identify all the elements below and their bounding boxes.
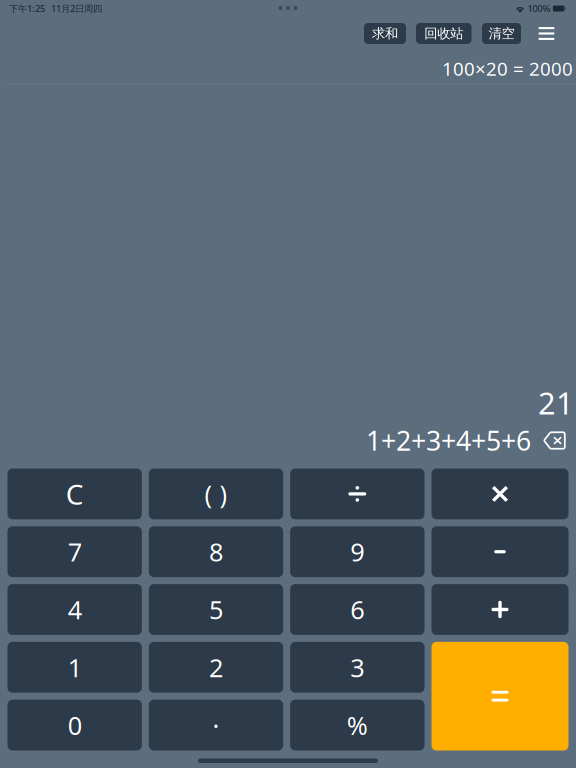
staticText: 3 bbox=[350, 650, 364, 684]
staticText: 1 bbox=[68, 650, 82, 684]
button[interactable]: 4 bbox=[7, 584, 142, 635]
staticText: 7 bbox=[68, 535, 82, 568]
button[interactable]: Add bbox=[431, 584, 568, 635]
button[interactable]: Multiply bbox=[431, 468, 568, 519]
button[interactable]: Equals bbox=[431, 642, 568, 750]
staticText: 9 bbox=[350, 535, 364, 568]
button[interactable]: 7 bbox=[7, 526, 142, 577]
button[interactable]: 2 bbox=[149, 642, 283, 693]
staticText: 下午1:25 11月2日周四 bbox=[9, 2, 102, 15]
staticText: 0 bbox=[68, 708, 82, 742]
button[interactable]: 0 bbox=[7, 700, 142, 750]
button[interactable]: Menu bbox=[534, 21, 559, 45]
button[interactable]: 6 bbox=[290, 584, 424, 635]
button[interactable]: 3 bbox=[290, 642, 424, 693]
button[interactable]: 5 bbox=[149, 584, 283, 635]
button[interactable]: Delete bbox=[531, 431, 569, 450]
button[interactable]: ( ) bbox=[149, 468, 283, 519]
staticText: 21 bbox=[538, 382, 574, 423]
button[interactable]: 清空 bbox=[482, 23, 521, 44]
staticText: 清空 bbox=[488, 25, 514, 42]
button[interactable]: 求和 bbox=[364, 23, 406, 44]
button[interactable]: 8 bbox=[149, 526, 283, 577]
staticText: ( ) bbox=[204, 477, 227, 511]
button[interactable]: · bbox=[149, 700, 283, 750]
staticText: 1+2+3+4+5+6 bbox=[366, 423, 531, 458]
staticText: 5 bbox=[209, 593, 223, 626]
staticText: 100×20 = 2000 bbox=[442, 56, 573, 81]
button[interactable]: % bbox=[290, 700, 424, 750]
staticText: 2 bbox=[209, 650, 223, 684]
staticText: 6 bbox=[350, 593, 364, 626]
staticText: · bbox=[212, 708, 219, 742]
staticText: 回收站 bbox=[424, 25, 463, 42]
staticText: 求和 bbox=[372, 25, 398, 42]
staticText: C bbox=[66, 475, 84, 512]
button[interactable]: Subtract bbox=[431, 526, 568, 577]
button[interactable]: 回收站 bbox=[416, 23, 471, 44]
staticText: % bbox=[347, 708, 368, 742]
button[interactable]: 1 bbox=[7, 642, 142, 693]
staticText: 100% bbox=[527, 2, 550, 15]
staticText: 4 bbox=[68, 593, 82, 626]
button[interactable]: C bbox=[7, 468, 142, 519]
button[interactable]: 9 bbox=[290, 526, 424, 577]
button[interactable]: Divide bbox=[290, 468, 424, 519]
staticText: 8 bbox=[209, 535, 223, 568]
